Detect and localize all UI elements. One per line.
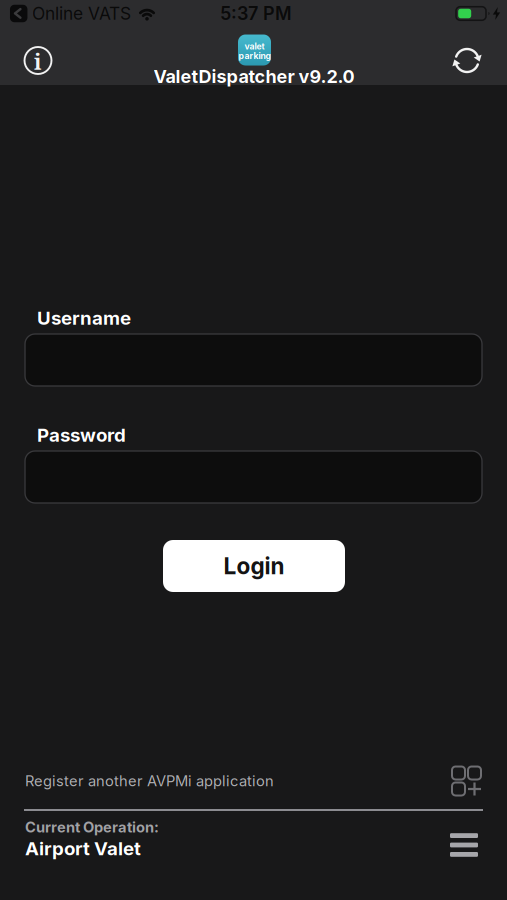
button[interactable]: Current Operation:	[25, 816, 482, 862]
button[interactable]: Login	[163, 540, 345, 592]
staticText: parking	[238, 50, 270, 61]
staticText: 5:37 PM	[220, 3, 292, 24]
staticText: Password	[37, 424, 126, 446]
button[interactable]: Refresh	[452, 45, 482, 75]
staticText: Username	[37, 307, 131, 329]
button[interactable]: Info	[24, 47, 51, 74]
staticText: Register another AVPMi application	[25, 772, 274, 790]
staticText: valet	[244, 41, 264, 51]
staticText: i	[34, 47, 42, 76]
staticText: Current Operation:	[25, 818, 159, 836]
staticText: Login	[223, 552, 284, 580]
staticText: Airport Valet	[25, 837, 141, 860]
button[interactable]: Register another AVPMi application	[25, 759, 482, 803]
staticText: Online VATS	[32, 3, 131, 24]
staticText: ValetDispatcher v9.2.0	[153, 66, 354, 87]
